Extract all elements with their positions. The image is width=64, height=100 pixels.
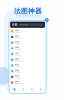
staticText: 法图神器 — [14, 7, 42, 15]
button[interactable]: 消息 — [27, 88, 36, 93]
staticText: 企业风险评估 — [15, 71, 21, 73]
button[interactable]: 企业法务 — [9, 28, 46, 34]
staticText: 全流程跟进 — [15, 43, 20, 44]
staticText: 文书生成 — [15, 52, 19, 54]
staticText: 一键自动起草 — [15, 54, 21, 56]
staticText: 首页 — [13, 90, 15, 92]
button[interactable]: 我的 — [36, 88, 45, 93]
button[interactable]: 知识产权 — [9, 63, 46, 68]
staticText: 紧急求助 — [15, 81, 19, 82]
staticText: 快速响应通道 — [15, 83, 21, 84]
button[interactable]: 文书生成 — [9, 51, 46, 57]
staticText: 推荐 — [42, 30, 44, 32]
button[interactable]: 法规检索 — [9, 45, 46, 51]
staticText: 诉讼支持 — [15, 75, 19, 77]
button[interactable]: 在线咨询 — [9, 57, 46, 63]
button[interactable]: 合同审查 — [9, 34, 46, 40]
staticText: 全程代理服务 — [15, 77, 21, 79]
staticText: 合规体检 — [15, 69, 19, 71]
button[interactable]: 案件管理 — [9, 40, 46, 45]
staticText: 企业法务 — [15, 29, 19, 31]
staticText: 合同审查 — [15, 35, 19, 37]
button[interactable]: 紧急求助 — [9, 80, 46, 85]
staticText: 智慧法律服务平台 — [16, 14, 40, 17]
staticText: 案件管理 — [15, 41, 19, 42]
staticText: 搜索法规 / 案例 — [22, 24, 28, 26]
button[interactable]: 首页 — [10, 88, 19, 93]
staticText: 在线咨询 — [15, 58, 19, 60]
staticText: 消息 — [31, 90, 33, 92]
button[interactable]: 诉讼支持 — [9, 74, 46, 80]
staticText: 服务 — [22, 90, 24, 92]
staticText: 法图 — [12, 23, 18, 26]
button[interactable]: 服务 — [19, 88, 27, 93]
staticText: 商标专利保护 — [15, 66, 21, 67]
staticText: 律师实时答疑 — [15, 60, 21, 61]
staticText: 知识产权 — [15, 64, 19, 65]
staticText: 我的 — [39, 90, 41, 92]
staticText: 海量法条查询 — [15, 48, 21, 50]
staticText: 风险智能识别 — [15, 37, 21, 39]
staticText: 专业顾问团队 — [15, 31, 21, 33]
staticText: 法规检索 — [15, 47, 19, 48]
button[interactable]: 合规体检 — [9, 68, 46, 74]
